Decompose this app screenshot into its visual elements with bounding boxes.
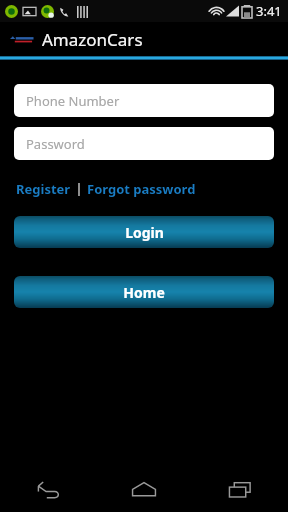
staticText: AmazonCars	[42, 28, 143, 51]
button[interactable]: Back	[0, 466, 96, 512]
staticText: 3:41	[256, 2, 282, 20]
button[interactable]: Phone Number	[14, 84, 274, 117]
staticText: Forgot password	[87, 180, 196, 198]
staticText: Phone Number	[26, 92, 120, 110]
button[interactable]: Home	[14, 276, 274, 308]
button[interactable]: Home	[96, 466, 192, 512]
button[interactable]: Password	[14, 127, 274, 160]
staticText: Password	[26, 135, 85, 153]
staticText: Home	[123, 283, 165, 302]
staticText: Register	[16, 180, 71, 198]
staticText: Login	[125, 223, 164, 242]
button[interactable]: Login	[14, 216, 274, 248]
button[interactable]: Register	[16, 180, 71, 198]
button[interactable]: Forgot password	[87, 180, 196, 198]
button[interactable]: Recent apps	[192, 466, 288, 512]
